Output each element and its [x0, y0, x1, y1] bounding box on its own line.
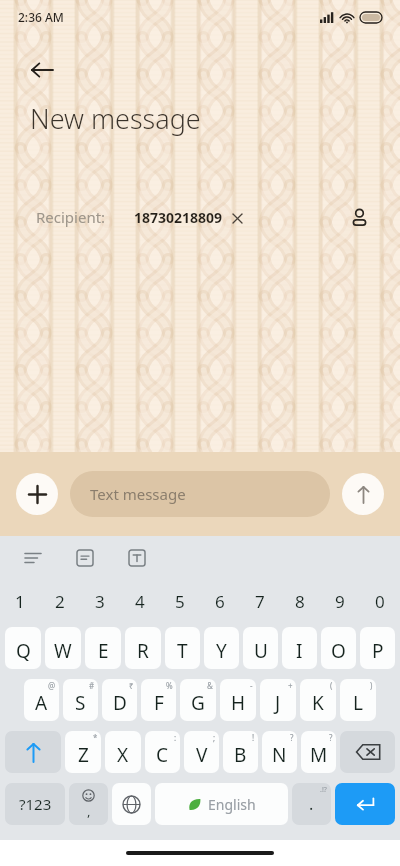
button[interactable]: !: [223, 731, 258, 773]
staticText: ): [370, 680, 373, 691]
button[interactable]: Clipboard: [70, 543, 100, 573]
button[interactable]: 3: [80, 580, 120, 622]
button[interactable]: @: [24, 679, 59, 721]
staticText: Z: [78, 742, 89, 768]
staticText: U: [254, 638, 268, 664]
button[interactable]: 4: [120, 580, 160, 622]
staticText: X: [117, 742, 129, 768]
staticText: !: [252, 732, 255, 743]
button[interactable]: Text settings: [122, 543, 152, 573]
staticText: G: [191, 690, 205, 716]
staticText: ₹: [129, 680, 134, 691]
staticText: Y: [216, 638, 227, 664]
staticText: 5: [175, 590, 185, 613]
button[interactable]: Shift: [5, 731, 61, 773]
button[interactable]: :: [145, 731, 180, 773]
button[interactable]: Send: [342, 473, 384, 515]
button[interactable]: Backspace: [340, 731, 395, 773]
button[interactable]: ₹: [102, 679, 137, 721]
staticText: -: [250, 680, 253, 691]
button[interactable]: Y: [204, 627, 239, 669]
staticText: +: [288, 680, 293, 691]
button[interactable]: *: [65, 731, 101, 773]
button[interactable]: English: [155, 783, 288, 825]
staticText: @: [48, 680, 56, 691]
staticText: Q: [16, 638, 31, 664]
staticText: Text message: [90, 484, 186, 504]
staticText: ?123: [19, 794, 52, 814]
staticText: L: [353, 690, 363, 716]
staticText: 2: [55, 590, 65, 613]
button[interactable]: %: [141, 679, 176, 721]
button[interactable]: 0: [360, 580, 400, 622]
button[interactable]: E: [85, 627, 121, 669]
staticText: V: [196, 742, 208, 768]
button[interactable]: ?: [262, 731, 297, 773]
button[interactable]: .: [292, 783, 331, 825]
staticText: 7: [255, 590, 265, 613]
button[interactable]: 1: [0, 580, 40, 622]
staticText: (: [330, 680, 333, 691]
button[interactable]: P: [360, 627, 395, 669]
staticText: *: [93, 732, 98, 743]
button[interactable]: 6: [200, 580, 240, 622]
button[interactable]: 18730218809: [134, 208, 245, 227]
button[interactable]: Back: [22, 50, 62, 90]
button[interactable]: Pick contact: [342, 200, 376, 234]
staticText: Recipient:: [36, 207, 106, 227]
button[interactable]: 2: [40, 580, 80, 622]
staticText: 18730218809: [134, 208, 223, 227]
button[interactable]: 7: [240, 580, 280, 622]
button[interactable]: ?: [301, 731, 336, 773]
staticText: M: [310, 742, 328, 768]
staticText: 1: [15, 590, 25, 613]
button[interactable]: X: [105, 731, 141, 773]
staticText: English: [208, 795, 256, 814]
button[interactable]: I: [282, 627, 317, 669]
staticText: 4: [135, 590, 145, 613]
staticText: E: [98, 638, 109, 664]
button[interactable]: (: [300, 679, 336, 721]
button[interactable]: O: [321, 627, 356, 669]
button[interactable]: +: [260, 679, 296, 721]
staticText: New message: [30, 100, 201, 137]
staticText: 8: [295, 590, 305, 613]
button[interactable]: ): [340, 679, 376, 721]
button[interactable]: U: [243, 627, 278, 669]
staticText: 9: [335, 590, 345, 613]
button[interactable]: Emoji and comma: [69, 783, 108, 825]
staticText: R: [137, 638, 149, 664]
staticText: ?: [329, 732, 333, 743]
button[interactable]: &: [180, 679, 216, 721]
button[interactable]: Change language: [112, 783, 151, 825]
button[interactable]: -: [220, 679, 256, 721]
staticText: O: [331, 638, 346, 664]
staticText: :: [174, 732, 177, 743]
staticText: K: [312, 690, 324, 716]
button[interactable]: Add attachment: [16, 473, 58, 515]
staticText: I: [296, 638, 303, 664]
staticText: #: [89, 680, 95, 691]
button[interactable]: R: [125, 627, 161, 669]
button[interactable]: Enter: [335, 783, 395, 825]
staticText: W: [54, 638, 72, 664]
button[interactable]: Q: [5, 627, 41, 669]
staticText: 3: [95, 590, 105, 613]
staticText: 0: [375, 590, 385, 613]
staticText: B: [234, 742, 247, 768]
button[interactable]: W: [45, 627, 81, 669]
staticText: N: [272, 742, 287, 768]
button[interactable]: #: [63, 679, 98, 721]
button[interactable]: T: [165, 627, 200, 669]
staticText: ,: [87, 802, 91, 820]
button[interactable]: 9: [320, 580, 360, 622]
staticText: %: [166, 680, 173, 691]
button[interactable]: Text message: [70, 471, 330, 517]
staticText: A: [35, 690, 48, 716]
button[interactable]: Menu: [18, 543, 48, 573]
button[interactable]: ?123: [5, 783, 65, 825]
button[interactable]: 5: [160, 580, 200, 622]
button[interactable]: ;: [184, 731, 219, 773]
staticText: 6: [215, 590, 225, 613]
button[interactable]: 8: [280, 580, 320, 622]
